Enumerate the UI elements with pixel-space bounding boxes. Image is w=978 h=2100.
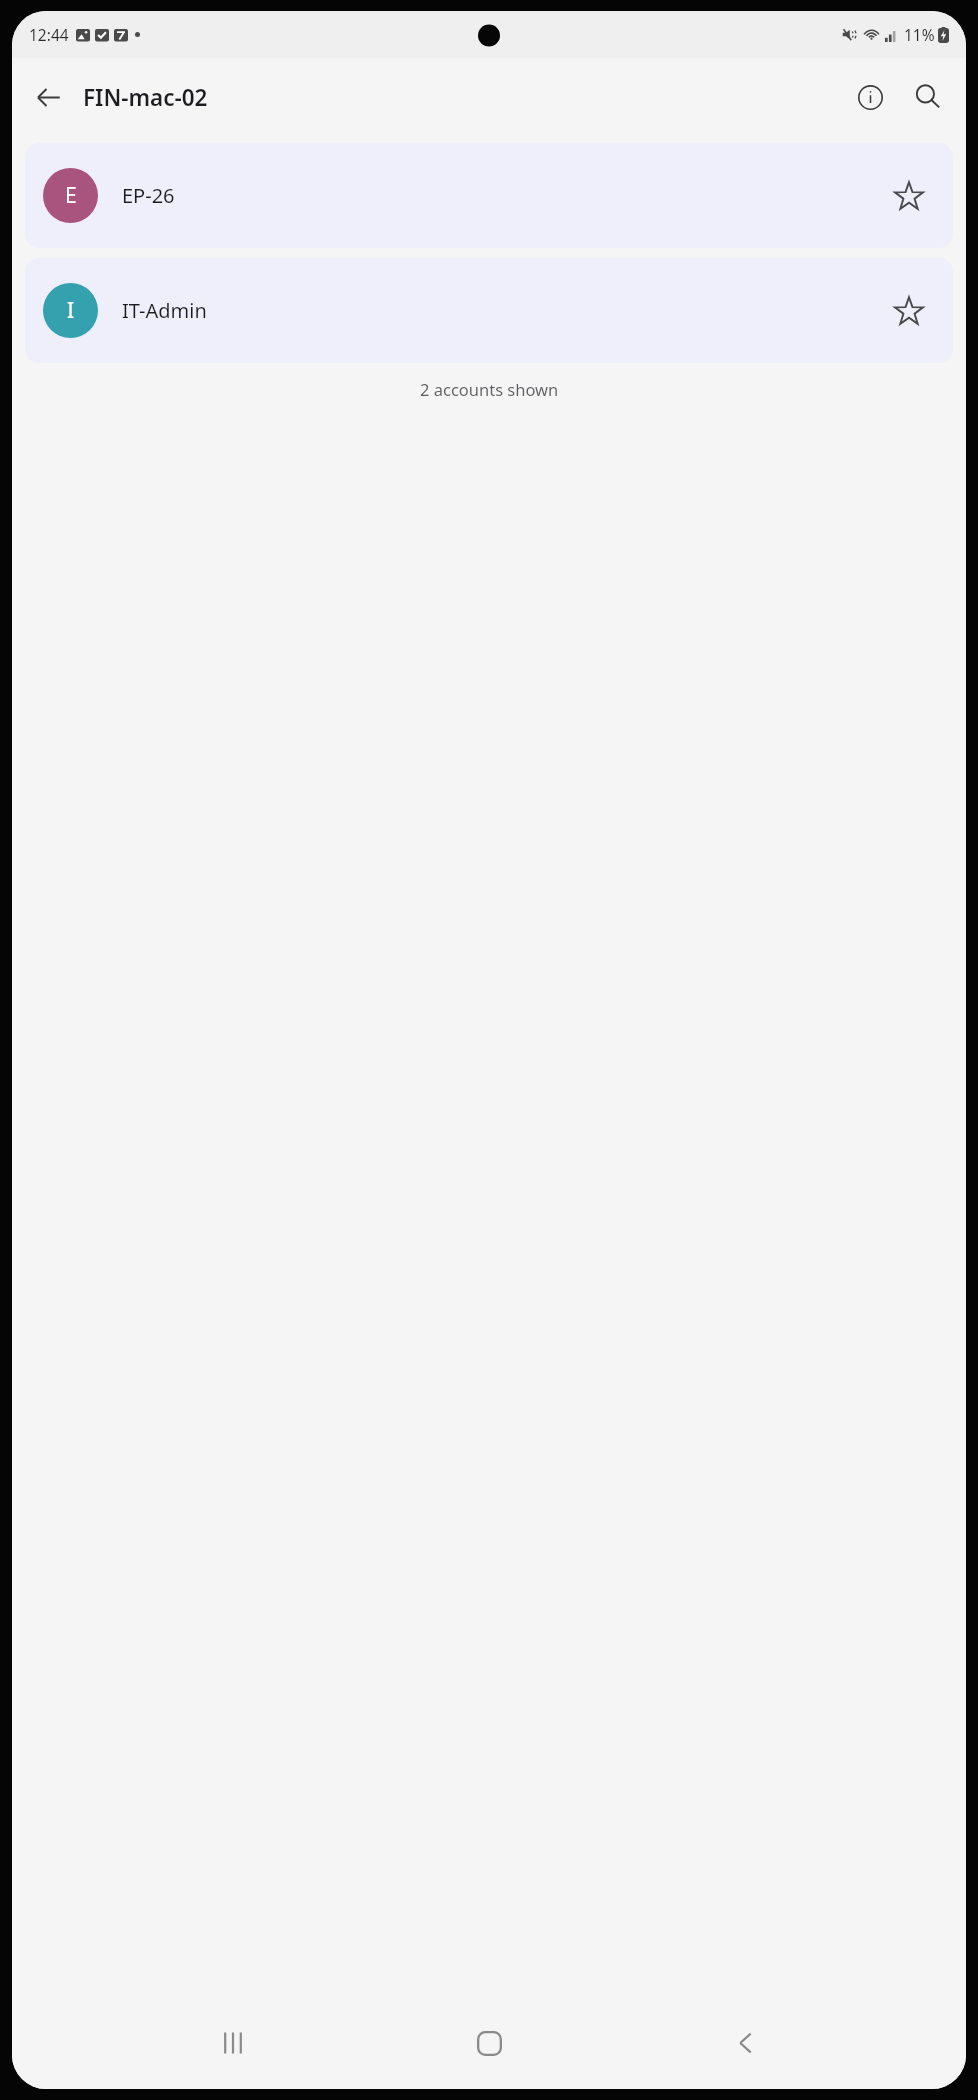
button[interactable]: Favorite EP-26 [883,170,935,222]
button[interactable]: Recent apps [197,2007,269,2079]
staticText: E [65,181,77,210]
staticText: FIN-mac-02 [83,82,208,113]
staticText: IT-Admin [122,297,207,324]
staticText: I [67,296,75,325]
staticText: EP-26 [122,182,175,209]
staticText: 2 accounts shown [420,378,559,400]
button[interactable]: Back [24,73,72,121]
staticText: 11% [904,24,935,45]
button[interactable]: Back [710,2007,782,2079]
button[interactable]: Info [846,73,894,121]
button[interactable]: Home [453,2007,525,2079]
button[interactable]: Search [904,73,952,121]
staticText: 12:44 [29,24,69,45]
button[interactable]: I [25,258,953,363]
button[interactable]: E [25,143,953,248]
button[interactable]: Favorite IT-Admin [883,285,935,337]
